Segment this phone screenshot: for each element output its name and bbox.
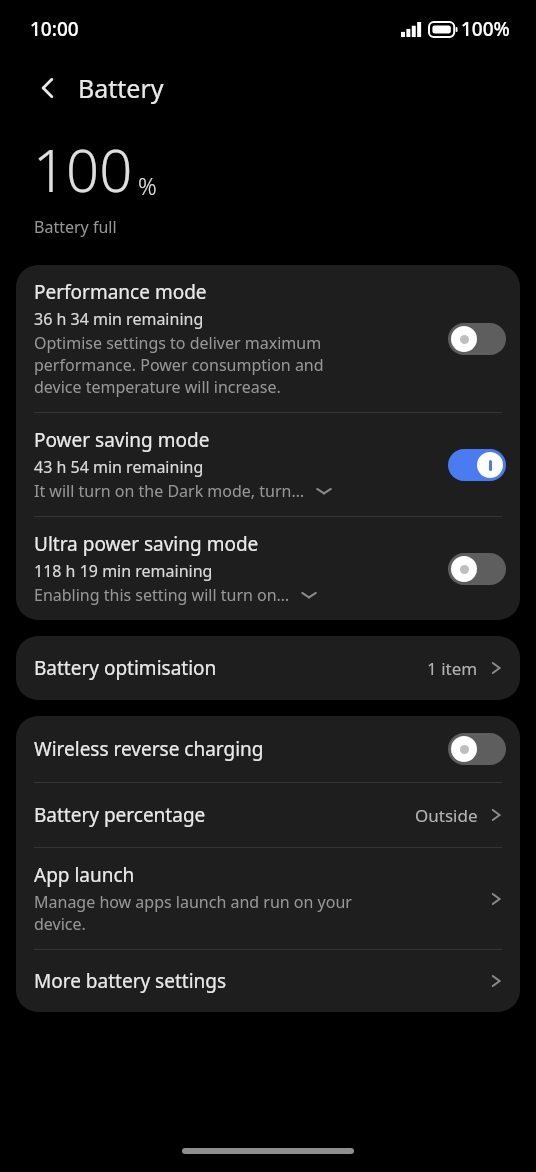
staticText: 118 h 19 min remaining bbox=[34, 560, 213, 582]
staticText: Battery bbox=[78, 71, 164, 105]
staticText: Battery full bbox=[34, 216, 117, 238]
staticText: Battery percentage bbox=[34, 802, 415, 828]
staticText: App launch bbox=[34, 862, 135, 888]
staticText: 100 bbox=[33, 130, 133, 209]
staticText: It will turn on the Dark mode, turn… bbox=[34, 480, 305, 502]
staticText: 1 item bbox=[427, 657, 478, 680]
button[interactable]: Toggle off bbox=[448, 323, 506, 355]
staticText: Outside bbox=[415, 804, 478, 827]
staticText: 36 h 34 min remaining bbox=[34, 308, 204, 330]
staticText: % bbox=[138, 170, 157, 201]
button[interactable]: Battery optimisation bbox=[16, 636, 520, 700]
staticText: Enabling this setting will turn on… bbox=[34, 584, 290, 606]
button[interactable]: Toggle off bbox=[448, 553, 506, 585]
button[interactable]: App launch bbox=[16, 848, 520, 949]
button[interactable]: Back bbox=[28, 68, 68, 108]
staticText: 100% bbox=[461, 16, 510, 42]
staticText: Battery optimisation bbox=[34, 655, 427, 681]
staticText: device temperature will increase. bbox=[34, 376, 281, 398]
staticText: 43 h 54 min remaining bbox=[34, 456, 204, 478]
staticText: More battery settings bbox=[34, 968, 486, 994]
button[interactable]: Wireless reverse charging bbox=[16, 716, 520, 782]
staticText: Ultra power saving mode bbox=[34, 531, 259, 557]
button[interactable]: Performance mode bbox=[16, 265, 520, 412]
button[interactable]: Power saving mode bbox=[16, 413, 520, 516]
staticText: Wireless reverse charging bbox=[34, 736, 448, 762]
button[interactable]: Ultra power saving mode bbox=[16, 517, 520, 620]
staticText: device. bbox=[34, 913, 86, 935]
button[interactable]: More battery settings bbox=[16, 950, 520, 1012]
staticText: Power saving mode bbox=[34, 427, 210, 453]
staticText: Optimise settings to deliver maximum bbox=[34, 332, 322, 354]
staticText: 10:00 bbox=[30, 16, 79, 42]
staticText: Manage how apps launch and run on your bbox=[34, 891, 352, 913]
button[interactable]: Toggle off bbox=[448, 733, 506, 765]
staticText: performance. Power consumption and bbox=[34, 354, 324, 376]
button[interactable]: Battery percentage bbox=[16, 783, 520, 847]
button[interactable]: Toggle on bbox=[448, 449, 506, 481]
staticText: Performance mode bbox=[34, 279, 207, 305]
